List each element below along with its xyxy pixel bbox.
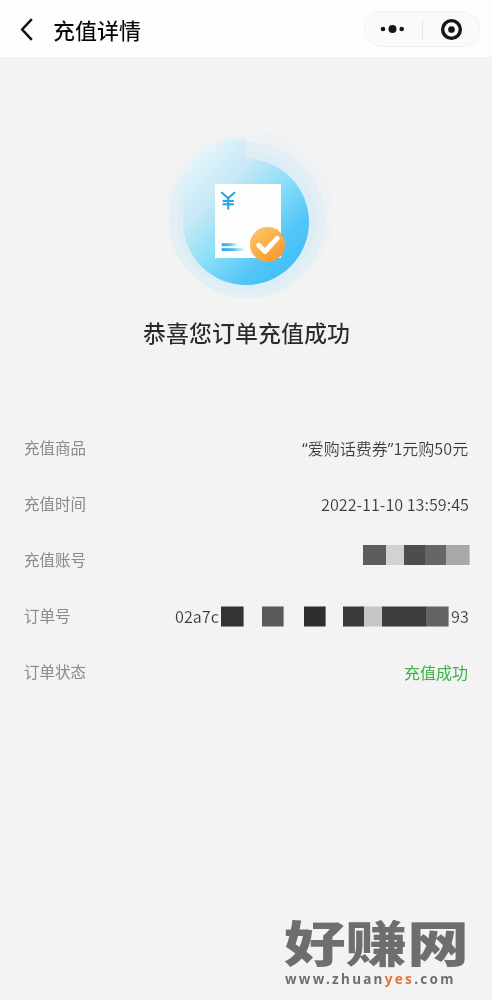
staticText: 充值账号: [24, 548, 87, 570]
staticText: www.zhuanyes.com: [285, 970, 456, 988]
staticText: 充值时间: [24, 492, 87, 514]
button[interactable]: Close mini program: [423, 11, 480, 47]
staticText: 2022-11-10 13:59:45: [321, 492, 469, 515]
button[interactable]: 充值商品: [0, 419, 492, 475]
staticText: 充值商品: [24, 436, 87, 458]
button[interactable]: 订单状态: [0, 643, 492, 699]
button[interactable]: 充值时间: [0, 475, 492, 531]
button[interactable]: Back: [6, 8, 48, 50]
staticText: 93: [451, 604, 469, 626]
staticText: 恭喜您订单充值成功: [143, 315, 350, 348]
staticText: 02a7c: [175, 604, 219, 626]
staticText: 好赚网: [284, 905, 470, 969]
staticText: 充值成功: [404, 660, 469, 683]
staticText: 订单状态: [24, 660, 87, 682]
staticText: 充值详情: [53, 13, 142, 45]
button[interactable]: 充值账号: [0, 531, 492, 587]
staticText: “爱购话费券”1元购50元: [302, 436, 469, 459]
button[interactable]: More options: [364, 11, 422, 47]
button[interactable]: 订单号: [0, 587, 492, 643]
staticText: 订单号: [24, 604, 71, 626]
